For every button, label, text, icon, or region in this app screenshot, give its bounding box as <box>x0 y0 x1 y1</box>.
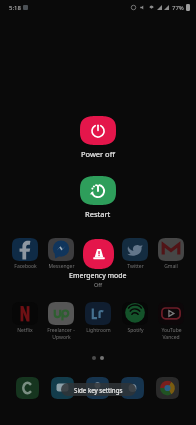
staticText: Emergency mode <box>69 271 127 281</box>
button[interactable]: Spotify <box>117 302 153 334</box>
button[interactable]: Facebook <box>7 238 43 270</box>
staticText: Spotify <box>127 327 144 334</box>
button[interactable]: Restart <box>80 176 116 205</box>
staticText: Off <box>94 281 103 288</box>
staticText: Lightroom <box>86 327 111 334</box>
staticText: 77% <box>172 4 184 12</box>
staticText: Side key settings <box>74 386 123 394</box>
staticText: Power off <box>81 149 115 159</box>
staticText: Messenger <box>48 263 75 270</box>
button[interactable]: Contacts <box>86 377 109 399</box>
staticText: Gmail <box>164 263 178 270</box>
button[interactable]: Power off <box>80 116 116 145</box>
button[interactable]: Messages <box>51 377 74 399</box>
button[interactable]: Gmail <box>153 238 189 270</box>
button[interactable]: Freelancer - <box>43 302 79 341</box>
button[interactable]: Lightroom <box>80 302 116 334</box>
staticText: YouTube <box>161 327 182 334</box>
staticText: Freelancer - <box>47 327 75 334</box>
staticText: Upwork <box>52 334 71 341</box>
staticText: Facebook <box>14 263 37 270</box>
staticText: Restart <box>85 209 111 219</box>
staticText: Twitter <box>127 263 144 270</box>
staticText: Netflix <box>17 327 33 334</box>
button[interactable]: Netflix <box>7 302 43 334</box>
staticText: Vanced <box>162 334 180 341</box>
button[interactable]: Messenger <box>43 238 79 270</box>
button[interactable]: Camera <box>121 377 144 399</box>
staticText: 5:18 <box>9 4 21 12</box>
button[interactable]: Twitter <box>117 238 153 270</box>
button[interactable]: YouTube <box>153 302 189 341</box>
button[interactable]: Chrome <box>156 377 179 399</box>
button[interactable]: Phone <box>16 377 39 399</box>
button[interactable]: Emergency mode <box>83 239 114 269</box>
button[interactable]: Side key settings <box>61 383 136 396</box>
